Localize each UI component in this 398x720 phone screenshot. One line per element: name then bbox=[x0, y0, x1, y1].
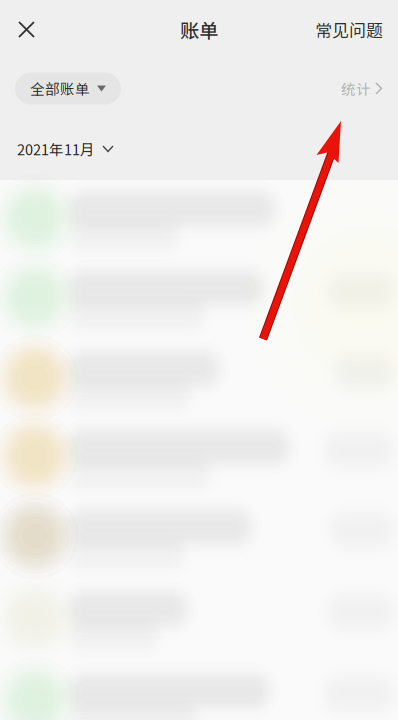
button[interactable]: Close bbox=[0, 0, 56, 59]
staticText: 常见问题 bbox=[315, 17, 383, 42]
staticText: 2021年11月 bbox=[17, 138, 95, 159]
button[interactable]: 统计 bbox=[341, 68, 383, 109]
staticText: 统计 bbox=[341, 78, 371, 99]
button[interactable]: 2021年11月 bbox=[0, 118, 398, 180]
button[interactable]: 全部账单 bbox=[15, 72, 121, 104]
staticText: 账单 bbox=[180, 16, 218, 43]
staticText: 全部账单 bbox=[30, 78, 90, 99]
button[interactable]: 常见问题 bbox=[315, 3, 398, 56]
